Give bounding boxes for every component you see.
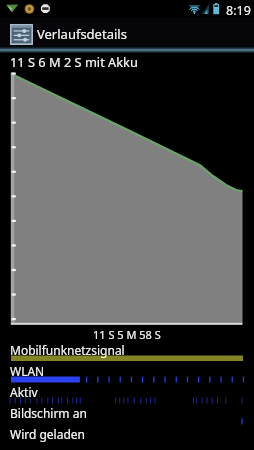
- staticText: 8:19: [226, 2, 251, 19]
- button[interactable]: Wird geladen: [0, 426, 254, 447]
- staticText: WLAN: [10, 363, 45, 379]
- staticText: Mobilfunknetzsignal: [10, 342, 125, 358]
- button[interactable]: Verlaufsdetails: [0, 18, 254, 50]
- staticText: Wird geladen: [10, 426, 86, 442]
- staticText: 11 S 5 M 58 S: [93, 327, 161, 342]
- staticText: Verlaufsdetails: [37, 25, 127, 43]
- staticText: Bildschirm an: [10, 405, 87, 421]
- button[interactable]: Mobilfunknetzsignal: [0, 342, 254, 363]
- button[interactable]: Aktiv: [0, 384, 254, 405]
- button[interactable]: Bildschirm an: [0, 405, 254, 426]
- button[interactable]: WLAN: [0, 363, 254, 384]
- staticText: Aktiv: [10, 384, 38, 400]
- staticText: 11 S 6 M 2 S mit Akku: [10, 53, 138, 70]
